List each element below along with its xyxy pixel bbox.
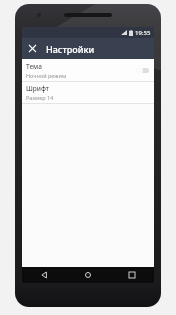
staticText: Размер 14 (26, 94, 54, 101)
button[interactable]: Шрифт (22, 82, 154, 103)
staticText: Шрифт (26, 84, 49, 93)
staticText: Настройки (46, 43, 95, 55)
button[interactable]: Ночной режим (136, 65, 150, 75)
staticText: 19:55 (135, 29, 151, 37)
button[interactable]: Закрыть (22, 38, 43, 59)
staticText: Тема (26, 62, 42, 71)
button[interactable]: Недавние приложения (110, 267, 154, 283)
staticText: Ночной режим (26, 72, 67, 79)
button[interactable]: Тема (22, 59, 154, 81)
button[interactable]: Главный экран (66, 267, 110, 283)
button[interactable]: Назад (22, 267, 66, 283)
